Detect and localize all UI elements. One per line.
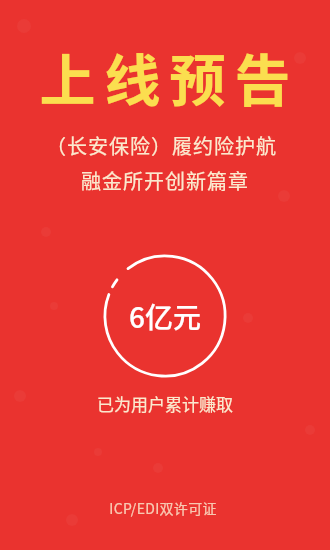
button[interactable]: 累计赚取 6 亿元 xyxy=(103,254,227,378)
staticText: 已为用户累计赚取 xyxy=(97,391,233,416)
staticText: 融金所开创新篇章 xyxy=(81,166,249,195)
button[interactable]: ICP/EDI双许可证 xyxy=(105,496,221,520)
staticText: （长安保险）履约险护航 xyxy=(46,131,277,160)
staticText: 6亿元 xyxy=(129,296,201,337)
staticText: ICP/EDI双许可证 xyxy=(109,498,217,518)
staticText: 上线预告 xyxy=(35,36,295,117)
